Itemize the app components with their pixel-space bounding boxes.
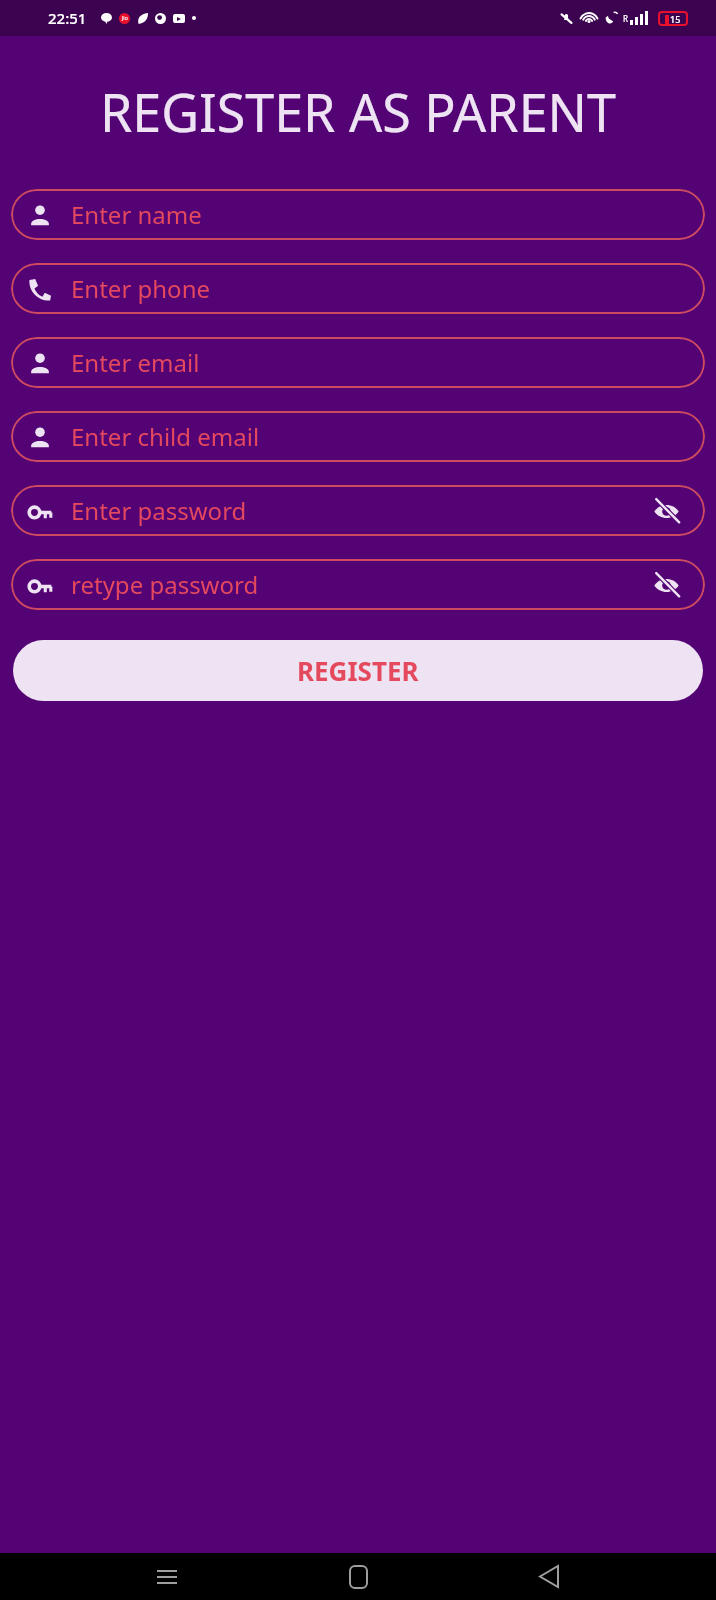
button[interactable]: retype password <box>11 559 705 610</box>
staticText: Enter password <box>71 494 247 527</box>
button[interactable]: Toggle password visibility <box>649 494 683 528</box>
staticText: 22:51 <box>48 8 87 28</box>
button[interactable]: Home <box>334 1553 382 1600</box>
button[interactable]: Enter email <box>11 337 705 388</box>
button[interactable]: Enter phone <box>11 263 705 314</box>
button[interactable]: Enter name <box>11 189 705 240</box>
staticText: 15 <box>670 13 681 25</box>
staticText: R <box>623 13 628 24</box>
button[interactable]: Back <box>525 1553 573 1600</box>
button[interactable]: REGISTER <box>13 640 703 701</box>
button[interactable]: Toggle password visibility <box>649 568 683 602</box>
staticText: Enter name <box>71 198 202 231</box>
staticText: REGISTER AS PARENT <box>42 76 674 147</box>
staticText: Jio <box>122 15 128 22</box>
button[interactable]: Recents <box>143 1553 191 1600</box>
staticText: Enter child email <box>71 420 260 453</box>
button[interactable]: Enter password <box>11 485 705 536</box>
staticText: Enter email <box>71 346 200 379</box>
staticText: retype password <box>71 568 259 601</box>
staticText: REGISTER <box>297 653 419 688</box>
button[interactable]: Enter child email <box>11 411 705 462</box>
staticText: Enter phone <box>71 272 211 305</box>
